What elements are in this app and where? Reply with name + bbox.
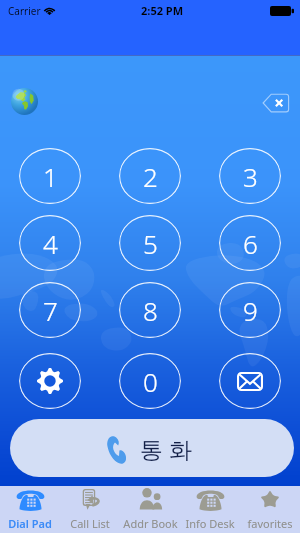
staticText: 5	[143, 226, 158, 261]
staticText: Carrier	[8, 4, 41, 18]
staticText: 2:52 PM	[141, 3, 184, 18]
button[interactable]: Messages	[219, 353, 281, 409]
staticText: 7	[43, 293, 58, 328]
staticText: Dial Pad	[8, 516, 52, 531]
button[interactable]: favorites	[240, 486, 300, 533]
staticText: Info Desk	[185, 516, 235, 531]
button[interactable]: 3	[219, 148, 281, 204]
staticText: 2	[143, 159, 158, 194]
button[interactable]: Settings	[19, 353, 81, 409]
button[interactable]: 7	[19, 282, 81, 338]
button[interactable]: Language	[11, 88, 38, 115]
button[interactable]: 8	[119, 282, 181, 338]
button[interactable]: Backspace	[262, 92, 290, 114]
staticText: 9	[243, 293, 258, 328]
staticText: 3	[243, 159, 258, 194]
button[interactable]: 6	[219, 215, 281, 271]
staticText: 6	[243, 226, 258, 261]
button[interactable]: 2	[119, 148, 181, 204]
staticText: favorites	[247, 516, 293, 531]
staticText: Addr Book	[123, 516, 178, 531]
staticText: Call List	[70, 516, 110, 531]
button[interactable]: 9	[219, 282, 281, 338]
button[interactable]: 5	[119, 215, 181, 271]
staticText: 0	[143, 364, 158, 399]
button[interactable]: 4	[19, 215, 81, 271]
button[interactable]: 통 화	[10, 419, 294, 477]
button[interactable]: 0	[119, 353, 181, 409]
staticText: 8	[143, 293, 158, 328]
button[interactable]: Addr Book	[120, 486, 180, 533]
button[interactable]: 1	[19, 148, 81, 204]
staticText: 4	[43, 226, 58, 261]
button[interactable]: Call List	[60, 486, 120, 533]
button[interactable]: Info Desk	[180, 486, 240, 533]
staticText: 1	[43, 159, 58, 194]
staticText: 통 화	[140, 433, 192, 464]
button[interactable]: Dial Pad	[0, 486, 60, 533]
